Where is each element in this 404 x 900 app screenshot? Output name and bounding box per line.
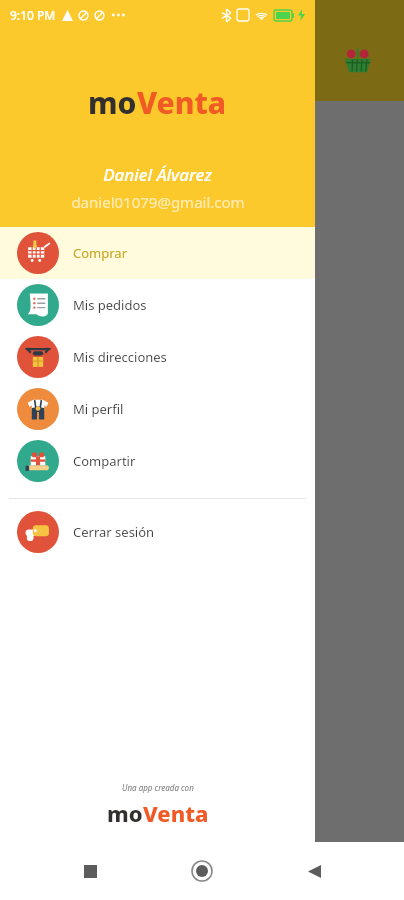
button[interactable]: Mis pedidos [0, 279, 315, 331]
button[interactable]: Comprar [0, 227, 315, 279]
button[interactable]: Cerrar sesión [0, 506, 315, 558]
staticText: Venta [143, 798, 209, 828]
button[interactable]: Recent apps [68, 849, 112, 893]
button[interactable]: Compartir [0, 435, 315, 487]
staticText: Mis pedidos [73, 296, 147, 314]
staticText: Compartir [73, 452, 136, 470]
button[interactable]: Mi perfil [0, 383, 315, 435]
staticText: mo [107, 798, 143, 828]
staticText: Mi perfil [73, 400, 124, 418]
button[interactable]: Back [292, 849, 336, 893]
staticText: Mis direcciones [73, 348, 167, 366]
button[interactable]: Home [180, 849, 224, 893]
staticText: 9:10 PM [10, 7, 56, 23]
staticText: Cerrar sesión [73, 523, 155, 541]
staticText: daniel01079@gmail.com [71, 192, 245, 212]
staticText: Daniel Álvarez [103, 163, 212, 186]
staticText: Una app creada con [122, 782, 194, 793]
button[interactable]: Mis direcciones [0, 331, 315, 383]
staticText: mo [88, 82, 137, 123]
staticText: Comprar [73, 244, 128, 262]
staticText: Venta [137, 82, 227, 123]
